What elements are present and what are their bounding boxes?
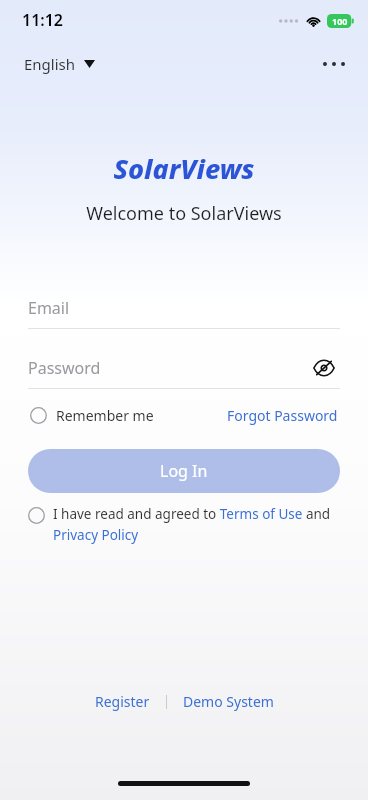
staticText: I have read and agreed to Terms of Use a…: [53, 505, 340, 544]
staticText: English: [24, 54, 76, 74]
staticText: Demo System: [183, 692, 274, 711]
button[interactable]: Log In: [28, 449, 340, 493]
button[interactable]: Forgot Password: [225, 401, 340, 430]
staticText: SolarViews: [0, 150, 368, 187]
button[interactable]: More options: [314, 44, 354, 84]
staticText: Remember me: [56, 406, 154, 425]
button[interactable]: I have read and agreed to Terms of Use a…: [28, 505, 340, 544]
staticText: Welcome to SolarViews: [0, 201, 368, 226]
staticText: 11:12: [22, 9, 64, 31]
staticText: Email: [28, 297, 70, 319]
button[interactable]: English: [18, 48, 101, 80]
staticText: Register: [95, 692, 150, 711]
staticText: Log In: [160, 460, 208, 482]
button[interactable]: Register: [87, 686, 158, 717]
staticText: 100: [332, 15, 348, 27]
button[interactable]: Remember me: [28, 401, 156, 430]
staticText: Password: [28, 357, 101, 379]
button[interactable]: Demo System: [175, 686, 282, 717]
button[interactable]: Show password: [308, 352, 340, 384]
staticText: Forgot Password: [227, 406, 338, 425]
